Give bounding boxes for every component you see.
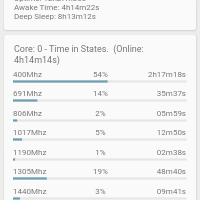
staticText: 400Mhz [13,70,42,79]
button[interactable]: 806Mhz [4,109,196,128]
staticText: 1% [63,148,138,157]
button[interactable]: Uptime: 12h27m36s Awake Time: 4h14m22s D… [4,0,196,30]
staticText: 19% [63,167,138,176]
button[interactable]: 400Mhz [4,70,196,89]
button[interactable]: 1305Mhz [4,167,196,186]
staticText: 54% [63,70,138,79]
staticText: 48m40s [138,167,186,176]
staticText: 691Mhz [13,89,42,98]
staticText: 3% [63,187,138,196]
staticText: 35m37s [138,89,186,98]
staticText: 2% [63,109,138,118]
staticText: Uptime: 12h27m36s Awake Time: 4h14m22s D… [14,0,100,21]
staticText: Core: 0 - Time in States. (Online: 4h14m… [14,44,151,66]
staticText: 09m41s [138,187,186,196]
staticText: 1017Mhz [13,128,47,137]
button[interactable]: 1017Mhz [4,128,196,147]
button[interactable]: 1190Mhz [4,148,196,167]
staticText: 2h17m18s [138,70,186,79]
staticText: 1190Mhz [13,148,47,157]
staticText: 806Mhz [13,109,42,118]
staticText: 1305Mhz [13,167,47,176]
staticText: 02m38s [138,148,186,157]
button[interactable]: 1440Mhz [4,187,196,200]
button[interactable]: 691Mhz [4,89,196,108]
staticText: 05m59s [138,109,186,118]
staticText: 14% [63,89,138,98]
staticText: 1440Mhz [13,187,47,196]
staticText: 5% [63,128,138,137]
staticText: 12m50s [138,128,186,137]
